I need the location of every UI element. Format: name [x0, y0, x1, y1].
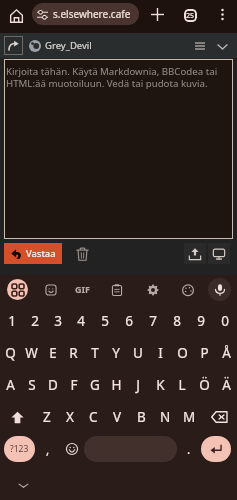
- button[interactable]: 4: [69, 305, 93, 337]
- button[interactable]: 9: [189, 305, 213, 337]
- staticText: 2: [31, 312, 39, 330]
- button[interactable]: X: [58, 401, 81, 433]
- button[interactable]: More options: [210, 2, 234, 26]
- button[interactable]: s.elsewhere.cafe: [32, 3, 139, 25]
- button[interactable]: New tab: [145, 2, 169, 26]
- button[interactable]: Space: [84, 436, 177, 462]
- button[interactable]: J: [127, 369, 149, 401]
- staticText: U: [133, 344, 143, 362]
- button[interactable]: 0: [213, 305, 237, 337]
- button[interactable]: W: [21, 337, 42, 369]
- staticText: Y: [112, 344, 120, 362]
- button[interactable]: Emoji: [61, 436, 82, 462]
- staticText: W: [25, 344, 38, 362]
- button[interactable]: Q: [0, 337, 21, 369]
- staticText: K: [156, 376, 165, 394]
- button[interactable]: Ö: [193, 369, 215, 401]
- staticText: E: [49, 344, 57, 362]
- staticText: Vastaa: [26, 247, 56, 260]
- button[interactable]: 6: [117, 305, 141, 337]
- staticText: 8: [173, 312, 181, 330]
- staticText: 0: [221, 312, 229, 330]
- button[interactable]: Å: [215, 337, 237, 369]
- staticText: ?123: [10, 443, 29, 455]
- button[interactable]: I: [149, 337, 171, 369]
- button[interactable]: T: [84, 337, 105, 369]
- staticText: J: [136, 376, 140, 394]
- button[interactable]: Delete: [72, 243, 92, 264]
- staticText: R: [69, 344, 78, 362]
- button[interactable]: 8: [165, 305, 189, 337]
- button[interactable]: R: [63, 337, 84, 369]
- button[interactable]: 3: [46, 305, 69, 337]
- button[interactable]: Preview: [208, 243, 230, 264]
- button[interactable]: N: [153, 401, 177, 433]
- button[interactable]: ?123: [4, 436, 35, 462]
- button[interactable]: G: [84, 369, 105, 401]
- button[interactable]: Vastaa: [4, 243, 62, 264]
- button[interactable]: H: [105, 369, 127, 401]
- button[interactable]: Stickers: [39, 278, 62, 301]
- button[interactable]: Voice input: [208, 278, 231, 301]
- staticText: Å: [222, 344, 231, 362]
- button[interactable]: GIF: [71, 278, 93, 300]
- staticText: 25: [186, 11, 195, 21]
- button[interactable]: Kirjoita tähän. Käytä Markdownia, BBCode…: [4, 59, 233, 239]
- button[interactable]: Shift: [0, 401, 35, 433]
- button[interactable]: Reply: [4, 36, 23, 55]
- button[interactable]: E: [42, 337, 63, 369]
- staticText: 6: [125, 312, 133, 330]
- staticText: GIF: [75, 283, 90, 295]
- button[interactable]: 7: [141, 305, 165, 337]
- button[interactable]: 1: [0, 305, 23, 337]
- button[interactable]: Themes: [176, 278, 199, 301]
- button[interactable]: Gboard: [7, 279, 28, 300]
- button[interactable]: D: [42, 369, 63, 401]
- staticText: Kirjoita tähän. Käytä Markdownia, BBCode…: [6, 65, 218, 89]
- staticText: F: [70, 376, 78, 394]
- staticText: 7: [149, 312, 157, 330]
- staticText: S: [28, 376, 36, 394]
- button[interactable]: B: [129, 401, 153, 433]
- staticText: V: [113, 408, 122, 426]
- staticText: 3: [54, 312, 62, 330]
- staticText: Ö: [199, 376, 210, 394]
- button[interactable]: Y: [105, 337, 127, 369]
- staticText: ,: [46, 441, 50, 457]
- button[interactable]: Clipboard: [105, 278, 128, 301]
- button[interactable]: C: [81, 401, 105, 433]
- button[interactable]: 5: [93, 305, 117, 337]
- button[interactable]: Tabs: [178, 3, 202, 27]
- staticText: N: [160, 408, 171, 426]
- button[interactable]: P: [193, 337, 215, 369]
- button[interactable]: Ä: [215, 369, 237, 401]
- button[interactable]: Hide keyboard: [15, 477, 31, 493]
- staticText: C: [89, 408, 98, 426]
- button[interactable]: O: [171, 337, 193, 369]
- button[interactable]: V: [105, 401, 129, 433]
- button[interactable]: A: [0, 369, 21, 401]
- button[interactable]: M: [177, 401, 201, 433]
- button[interactable]: K: [149, 369, 171, 401]
- staticText: 5: [101, 312, 109, 330]
- button[interactable]: Z: [35, 401, 58, 433]
- button[interactable]: Comma: [39, 436, 57, 462]
- button[interactable]: Menu: [189, 35, 211, 57]
- button[interactable]: Settings: [141, 278, 164, 301]
- staticText: P: [200, 344, 209, 362]
- button[interactable]: Upload: [184, 243, 206, 264]
- button[interactable]: L: [171, 369, 193, 401]
- button[interactable]: Backspace: [201, 401, 237, 433]
- button[interactable]: Collapse: [211, 35, 233, 57]
- staticText: Ä: [222, 376, 231, 394]
- button[interactable]: Enter: [201, 436, 231, 462]
- staticText: 4: [77, 312, 85, 330]
- button[interactable]: Period: [179, 436, 199, 462]
- button[interactable]: 2: [23, 305, 46, 337]
- staticText: s.elsewhere.cafe: [53, 7, 131, 21]
- button[interactable]: S: [21, 369, 42, 401]
- staticText: A: [6, 376, 15, 394]
- button[interactable]: U: [127, 337, 149, 369]
- button[interactable]: F: [63, 369, 84, 401]
- button[interactable]: Home: [4, 4, 28, 28]
